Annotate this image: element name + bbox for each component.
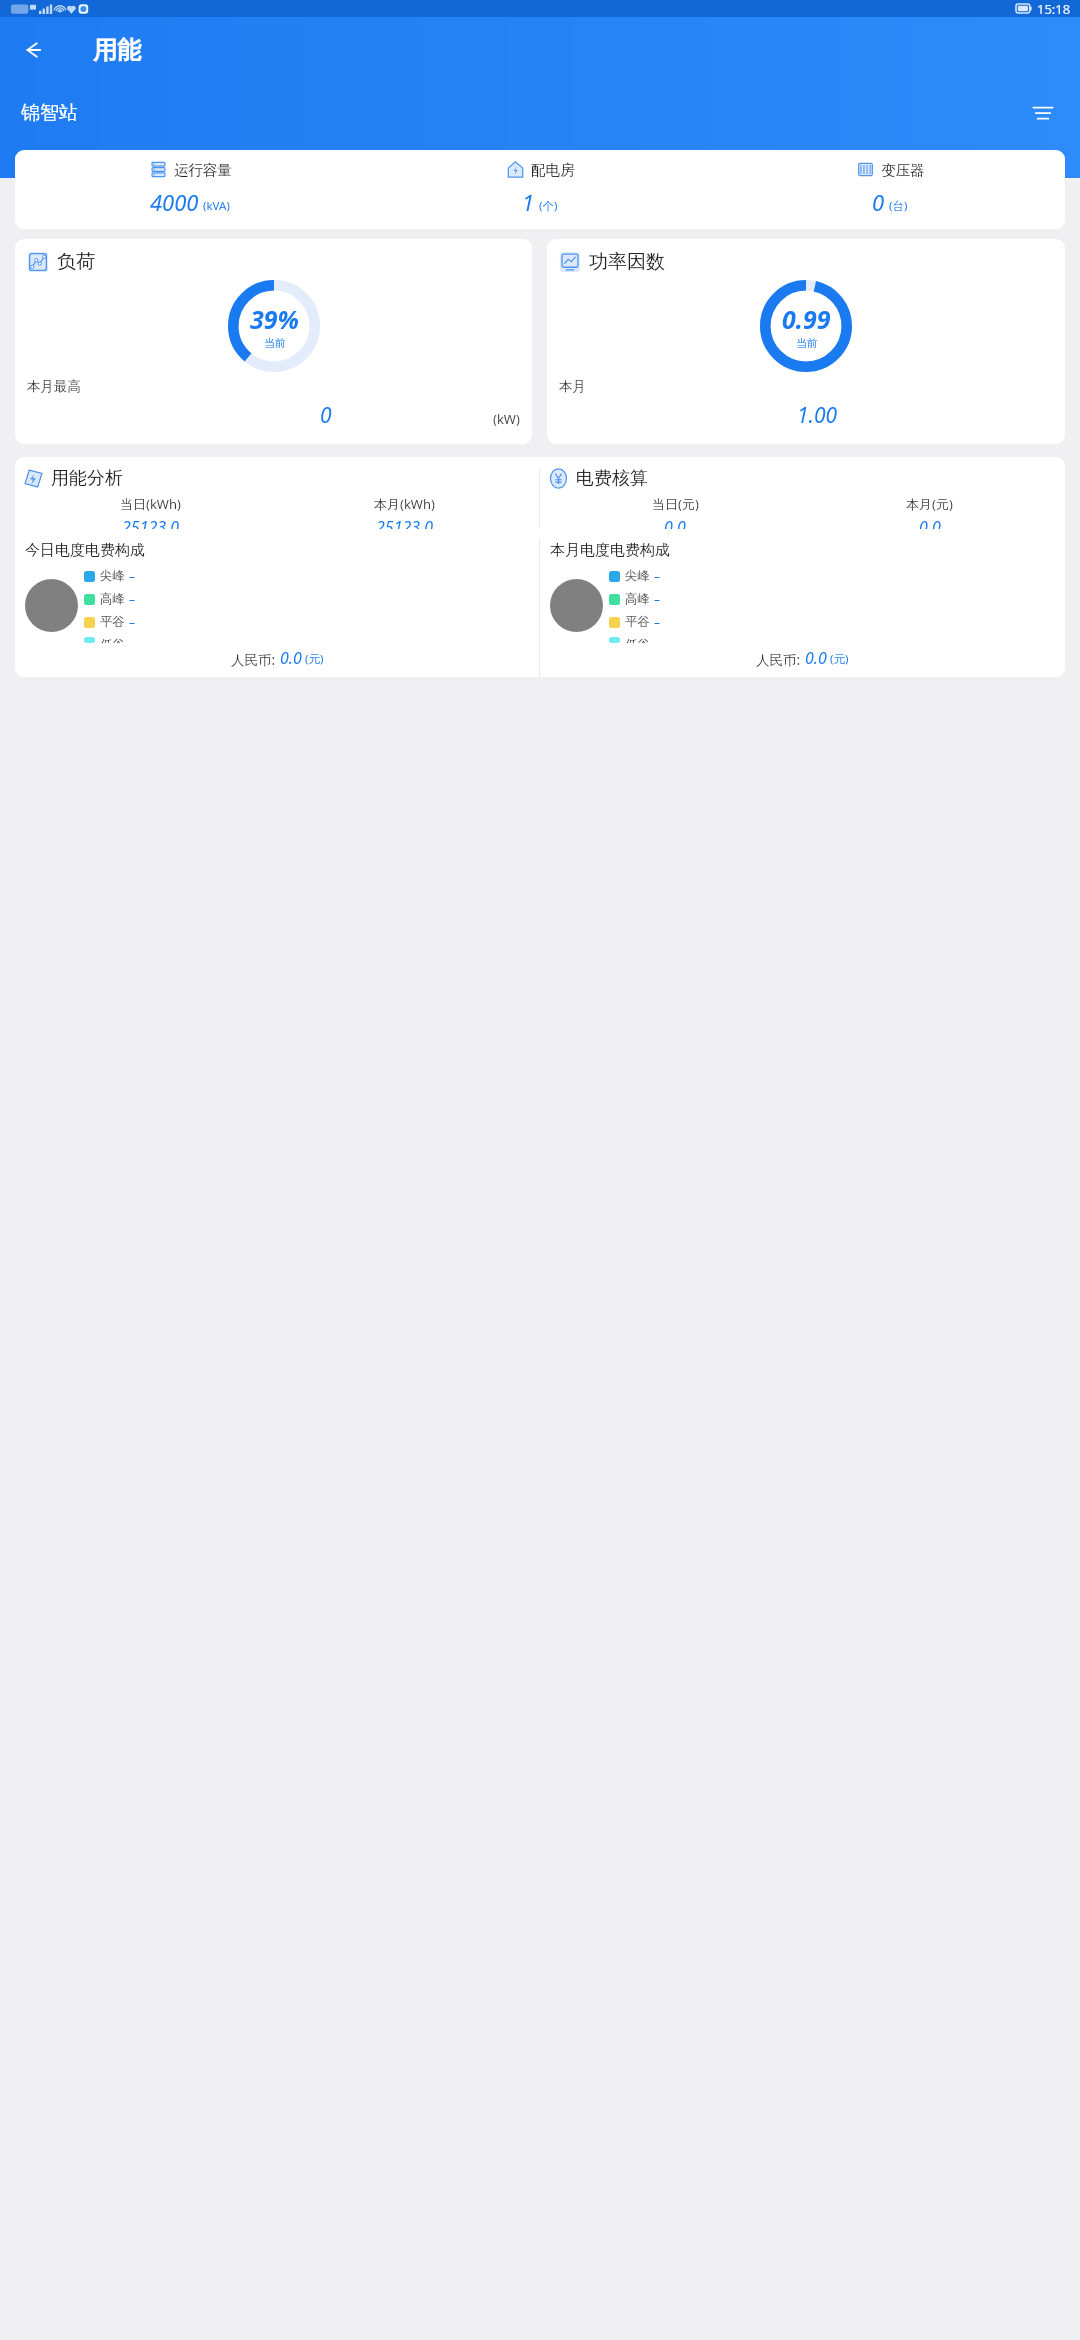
staticText: 本月(元) xyxy=(906,495,953,513)
staticText: 1 xyxy=(522,187,535,217)
staticText: 高峰 xyxy=(625,591,650,607)
staticText: 负荷 xyxy=(57,250,95,274)
staticText: 当日(kWh) xyxy=(120,495,181,513)
staticText: 1.00 xyxy=(797,401,838,430)
staticText: (个) xyxy=(539,198,558,214)
staticText: (元) xyxy=(830,651,849,667)
staticText: 功率因数 xyxy=(589,250,665,274)
staticText: 0 xyxy=(320,401,332,430)
staticText: (元) xyxy=(305,651,324,667)
staticText: (kW) xyxy=(493,410,520,428)
staticText: 当日(元) xyxy=(652,495,699,513)
staticText: 运行容量 xyxy=(174,161,232,179)
staticText: 尖峰 xyxy=(100,568,125,584)
button[interactable]: Menu xyxy=(1020,90,1066,136)
staticText: 人民币: xyxy=(231,651,276,669)
staticText: 本月(kWh) xyxy=(374,495,435,513)
staticText: 低谷 xyxy=(100,637,125,643)
staticText: 用能 xyxy=(93,35,141,65)
staticText: 25123.0 xyxy=(122,516,179,529)
button[interactable]: Back xyxy=(9,26,57,74)
staticText: 0.0 xyxy=(919,516,941,529)
staticText: 0.0 xyxy=(664,516,686,529)
button[interactable]: 负荷 xyxy=(15,239,532,444)
staticText: 本月电度电费构成 xyxy=(550,541,670,560)
staticText: – xyxy=(654,591,661,607)
staticText: 锦智站 xyxy=(21,101,78,125)
staticText: – xyxy=(654,568,661,584)
staticText: 尖峰 xyxy=(625,568,650,584)
staticText: 配电房 xyxy=(531,161,575,179)
button[interactable]: 用能分析 xyxy=(15,457,1065,677)
staticText: (台) xyxy=(889,198,908,214)
staticText: 平谷 xyxy=(625,614,650,630)
staticText: – xyxy=(129,614,136,630)
staticText: – xyxy=(654,614,661,630)
staticText: 高峰 xyxy=(100,591,125,607)
staticText: 0 xyxy=(872,187,885,217)
staticText: – xyxy=(129,568,136,584)
staticText: 4000 xyxy=(150,187,199,217)
staticText: 当前 xyxy=(796,336,818,350)
staticText: 本月 xyxy=(559,378,586,395)
staticText: 低谷 xyxy=(625,637,650,643)
staticText: (kVA) xyxy=(203,198,230,214)
staticText: 本月最高 xyxy=(27,378,81,395)
staticText: 0.99 xyxy=(782,302,831,336)
staticText: 变压器 xyxy=(881,161,925,179)
button[interactable]: 运行容量 xyxy=(15,150,1065,229)
staticText: – xyxy=(129,591,136,607)
button[interactable]: 功率因数 xyxy=(547,239,1065,444)
staticText: 平谷 xyxy=(100,614,125,630)
staticText: 0.0 xyxy=(280,647,302,669)
staticText: 0.0 xyxy=(805,647,827,669)
staticText: 当前 xyxy=(264,336,286,350)
staticText: 用能分析 xyxy=(51,467,123,490)
staticText: 今日电度电费构成 xyxy=(25,541,145,560)
staticText: 39% xyxy=(250,302,299,336)
staticText: 电费核算 xyxy=(576,467,648,490)
staticText: 人民币: xyxy=(756,651,801,669)
staticText: 25123.0 xyxy=(376,516,433,529)
staticText: 15:18 xyxy=(1037,0,1071,17)
